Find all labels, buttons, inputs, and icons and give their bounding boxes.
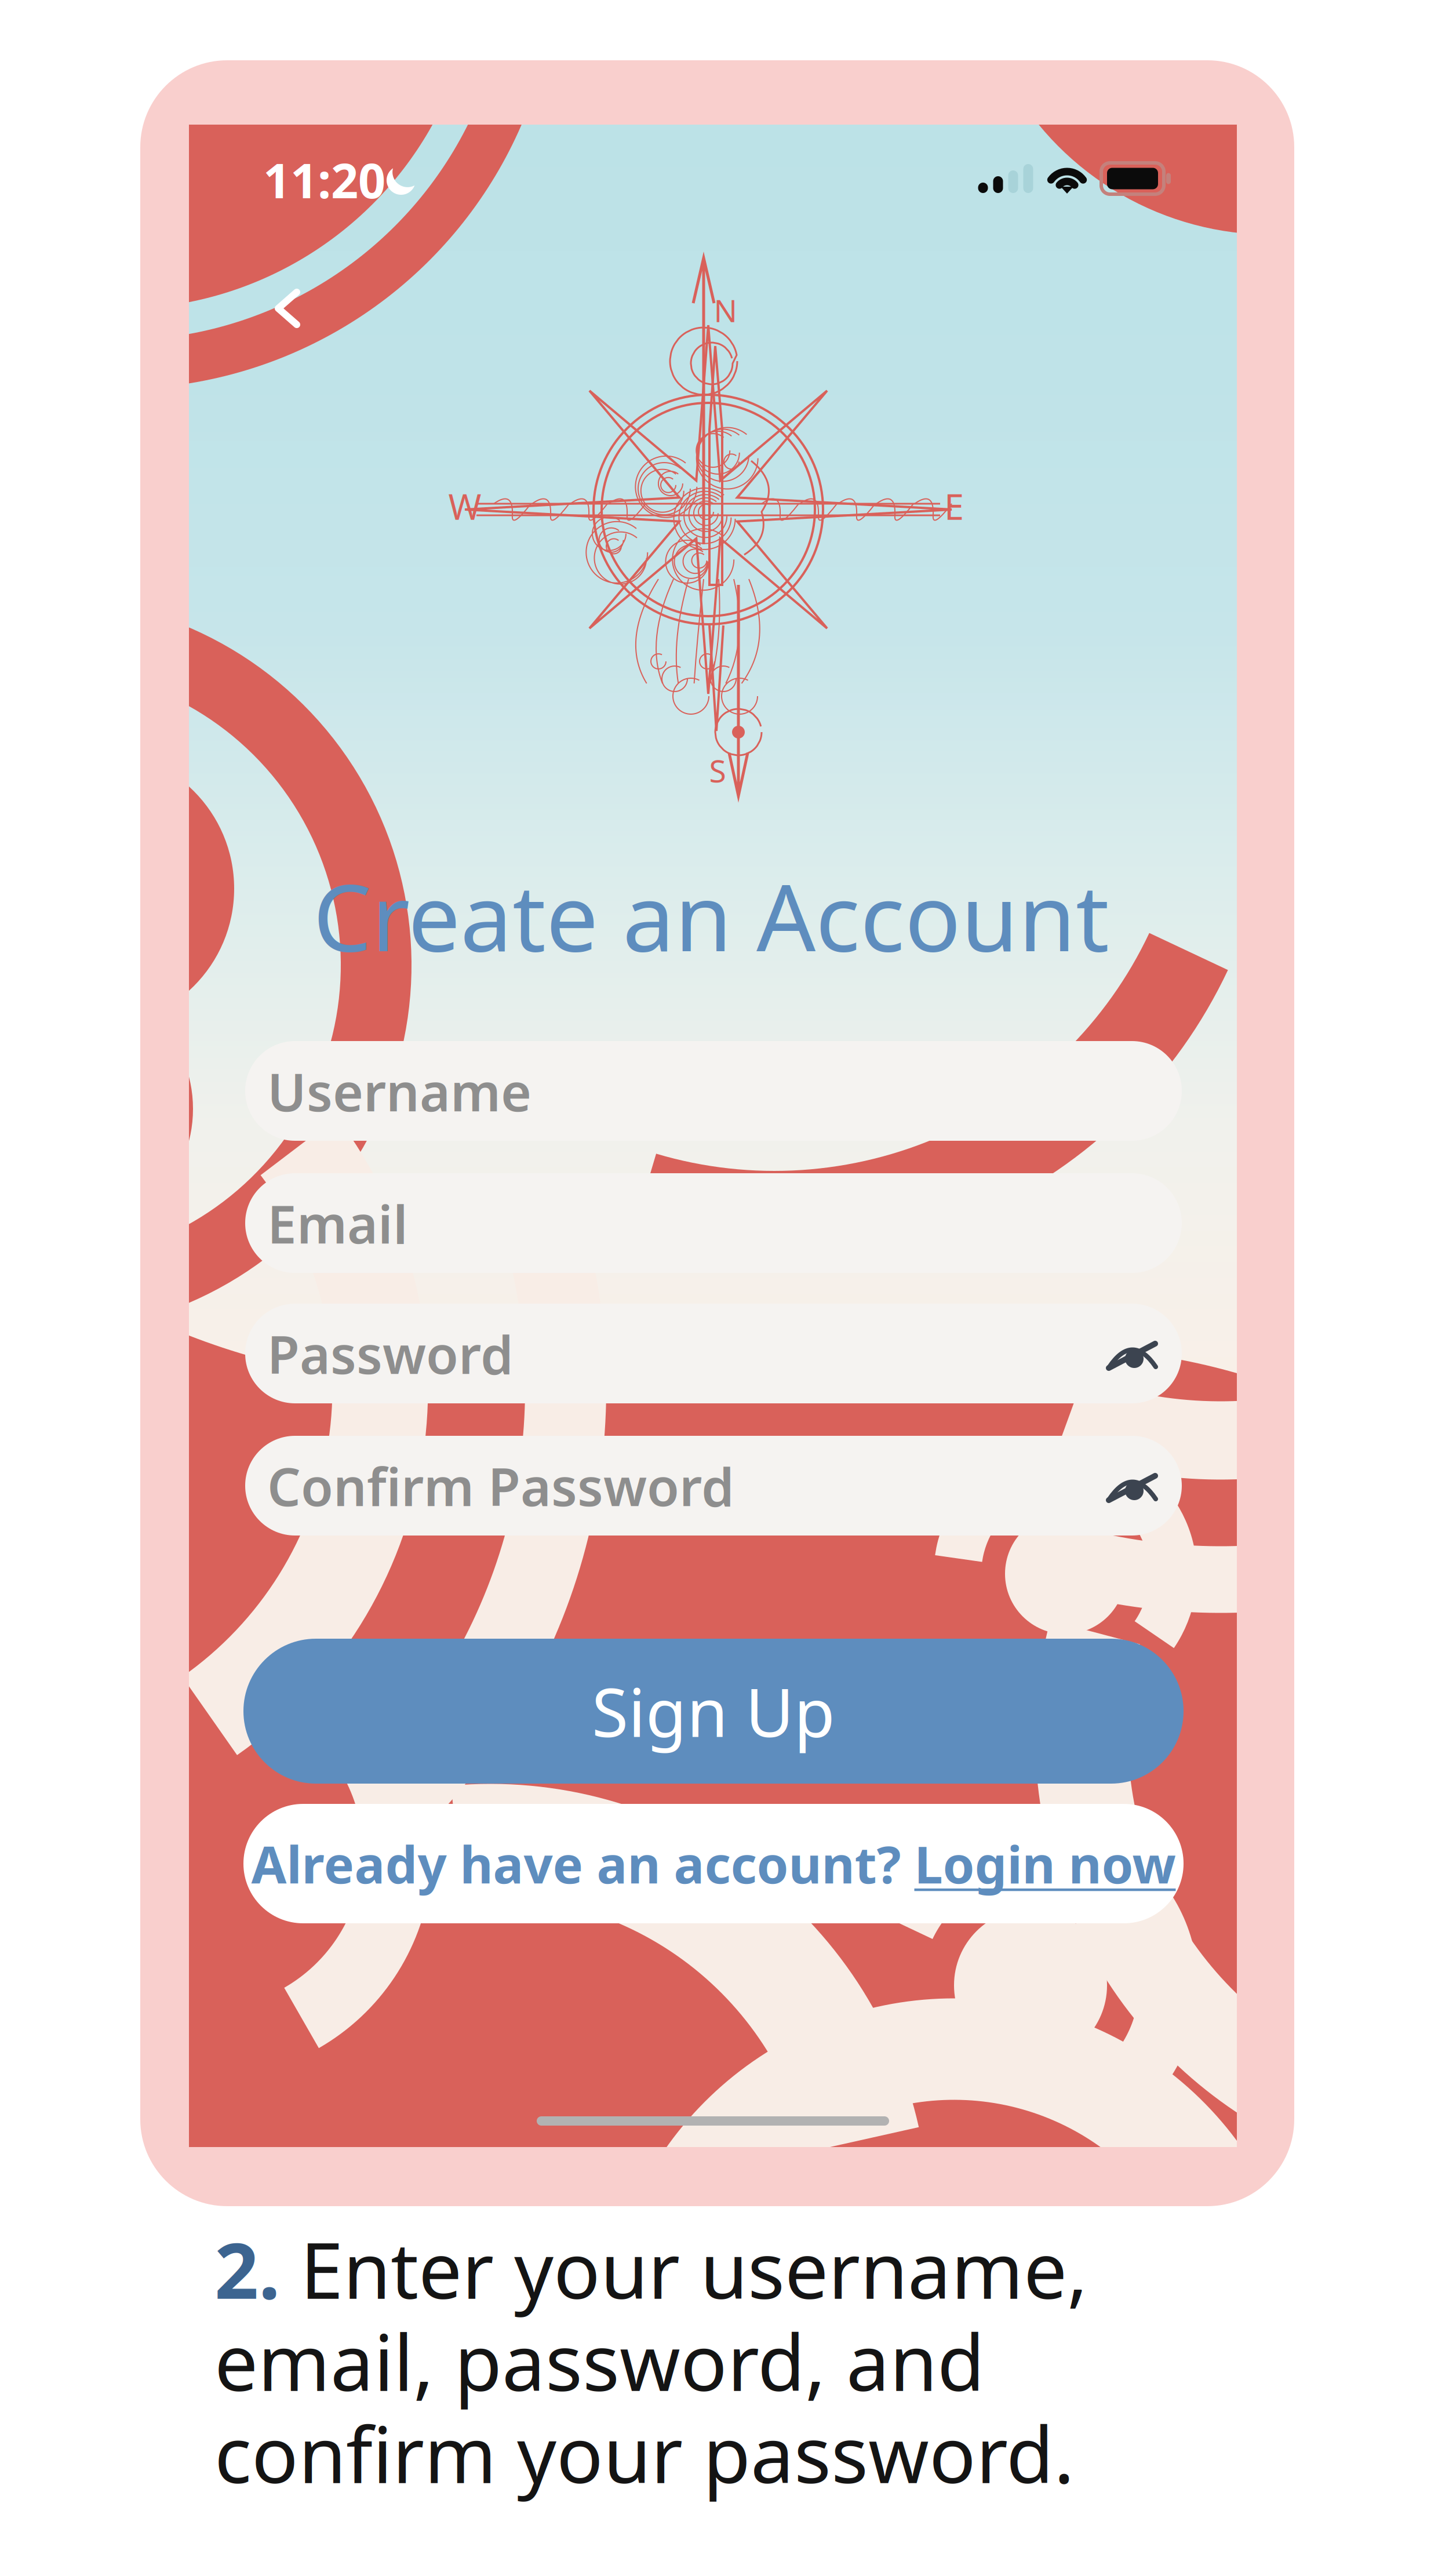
button[interactable]: Back bbox=[250, 271, 325, 346]
button[interactable]: Already have an account? Login now bbox=[243, 1804, 1184, 1923]
staticText: Sign Up bbox=[592, 1667, 835, 1755]
button[interactable]: Username bbox=[245, 1041, 1182, 1141]
staticText: 2. bbox=[214, 2217, 280, 2320]
staticText: Confirm Password bbox=[267, 1451, 734, 1521]
staticText: Create an Account bbox=[313, 854, 1109, 977]
staticText: Username bbox=[267, 1056, 531, 1126]
button[interactable]: Confirm Password bbox=[245, 1436, 1182, 1536]
staticText: S bbox=[709, 750, 726, 791]
staticText: 11:20 bbox=[263, 148, 385, 212]
button[interactable]: Sign Up bbox=[243, 1639, 1184, 1784]
staticText: Email bbox=[267, 1188, 408, 1258]
staticText: email, password, and bbox=[214, 2310, 985, 2412]
staticText: confirm your password. bbox=[214, 2402, 1075, 2504]
staticText: W bbox=[448, 482, 481, 530]
staticText: Password bbox=[267, 1319, 514, 1388]
button[interactable]: Email bbox=[245, 1173, 1182, 1273]
staticText: N bbox=[714, 290, 738, 331]
staticText: E bbox=[944, 482, 964, 530]
staticText: Already have an account? Login now bbox=[251, 1830, 1176, 1898]
staticText: Enter your username, bbox=[280, 2217, 1088, 2320]
button[interactable]: Password bbox=[245, 1304, 1182, 1403]
